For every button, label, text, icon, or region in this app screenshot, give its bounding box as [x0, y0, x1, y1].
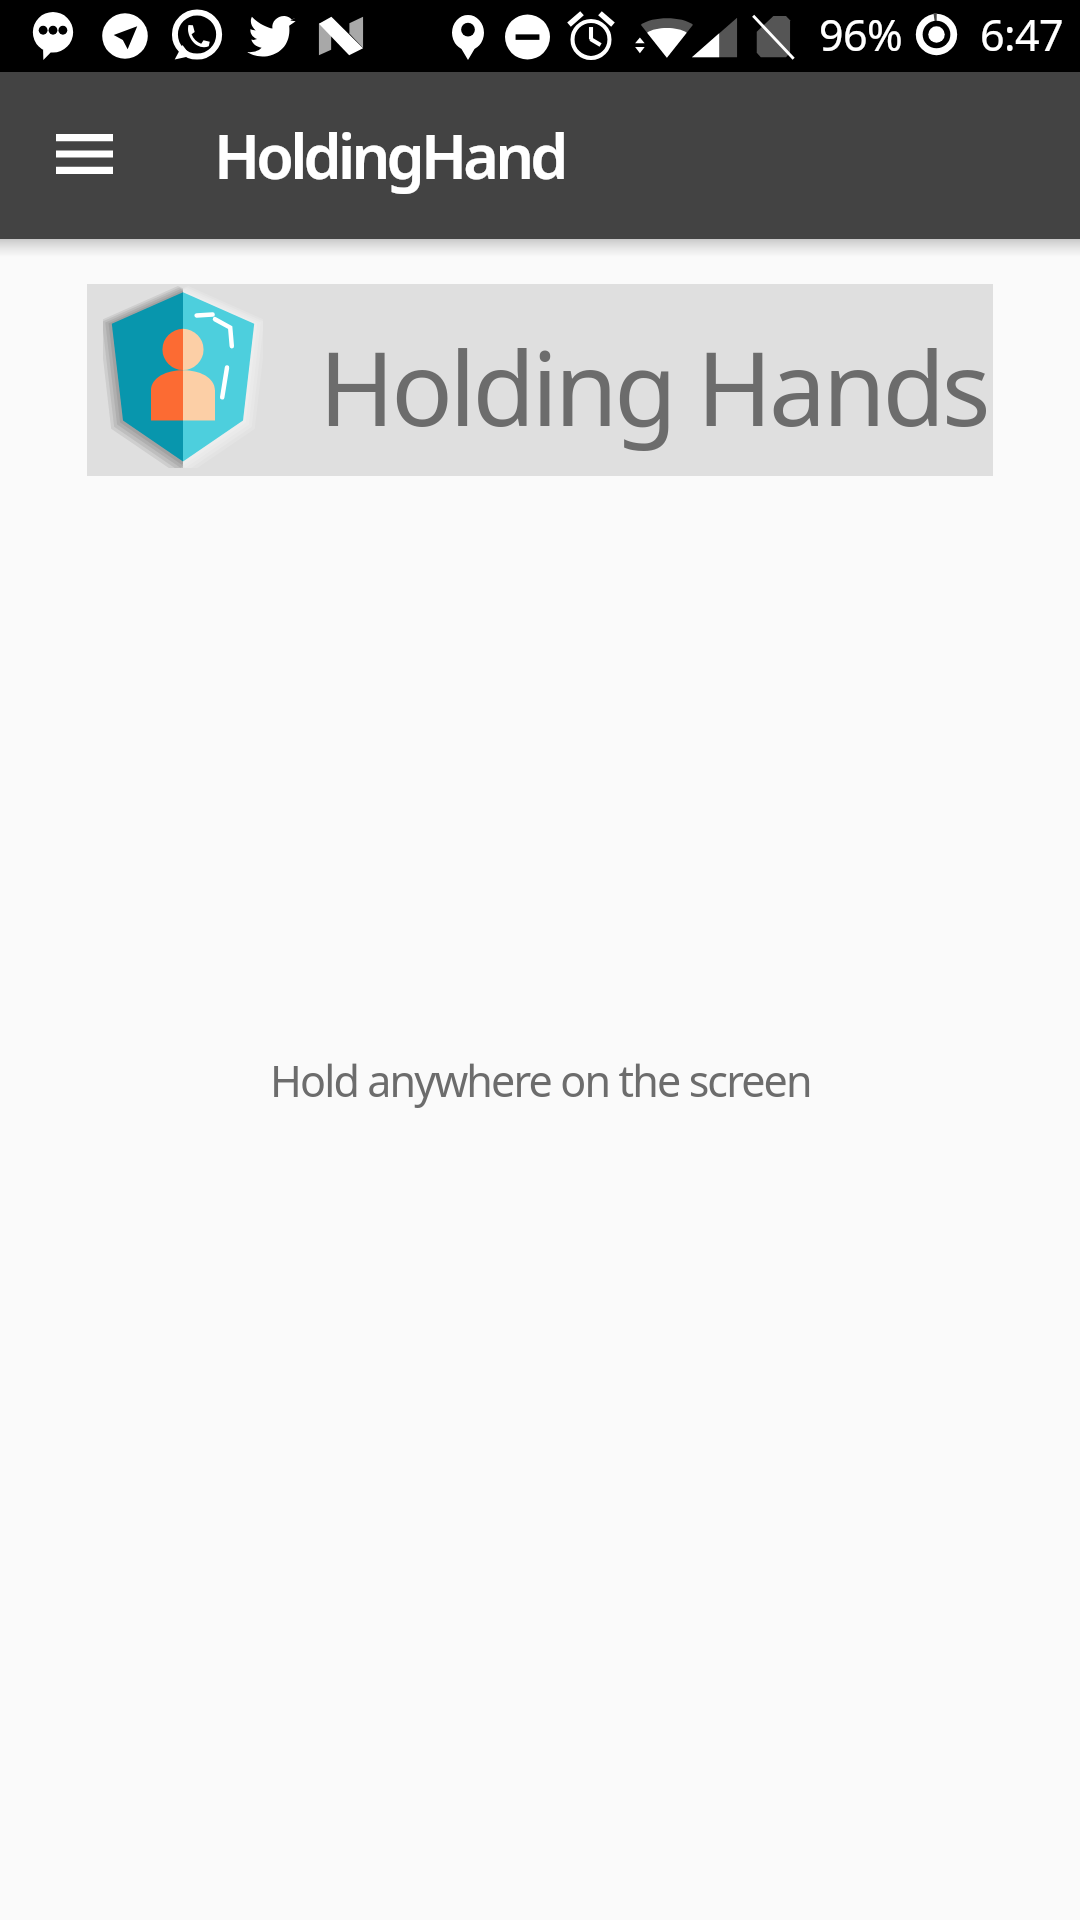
button[interactable]: Hold anywhere on the screen: [0, 239, 1080, 1920]
staticText: Hold anywhere on the screen: [270, 1051, 811, 1110]
button[interactable]: Holding Hands: [87, 284, 993, 476]
staticText: 6:47: [980, 5, 1063, 64]
staticText: 96%: [819, 5, 903, 64]
staticText: Holding Hands: [319, 317, 988, 456]
button[interactable]: Open navigation menu: [12, 82, 156, 226]
staticText: HoldingHand: [214, 114, 565, 197]
